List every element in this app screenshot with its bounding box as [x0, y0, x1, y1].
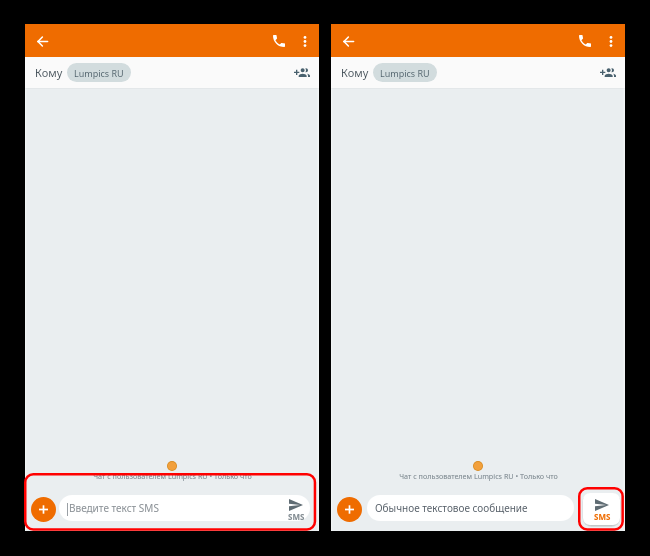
button[interactable]: Attach [31, 497, 56, 522]
button[interactable]: Back [333, 28, 363, 54]
staticText: Кому [341, 65, 369, 80]
button[interactable]: Send SMS [275, 494, 319, 531]
staticText: Lumpics RU [380, 67, 430, 79]
button[interactable]: Call [569, 27, 602, 55]
button[interactable]: More options [293, 27, 319, 55]
button[interactable]: Add recipient [284, 57, 319, 88]
button[interactable]: Send SMS [581, 494, 625, 531]
staticText: Введите текст SMS [69, 501, 159, 515]
staticText: Кому [35, 65, 63, 80]
button[interactable]: Lumpics RU [373, 63, 437, 82]
button[interactable]: Введите текст SMS [59, 495, 310, 521]
button[interactable]: Back [27, 28, 57, 54]
button[interactable]: Call [263, 27, 296, 55]
staticText: Обычное текстовое сообщение [375, 501, 528, 515]
button[interactable]: Обычное текстовое сообщение [367, 495, 574, 521]
button[interactable]: Lumpics RU [67, 63, 131, 82]
staticText: Чат с пользователем Lumpics RU • Только … [399, 471, 558, 481]
staticText: SMS [594, 511, 611, 522]
button[interactable]: More options [599, 27, 625, 55]
button[interactable]: Attach [337, 497, 362, 522]
staticText: Чат с пользователем Lumpics RU • Только … [93, 471, 252, 481]
staticText: SMS [288, 511, 305, 522]
staticText: Lumpics RU [74, 67, 124, 79]
button[interactable]: Add recipient [590, 57, 625, 88]
